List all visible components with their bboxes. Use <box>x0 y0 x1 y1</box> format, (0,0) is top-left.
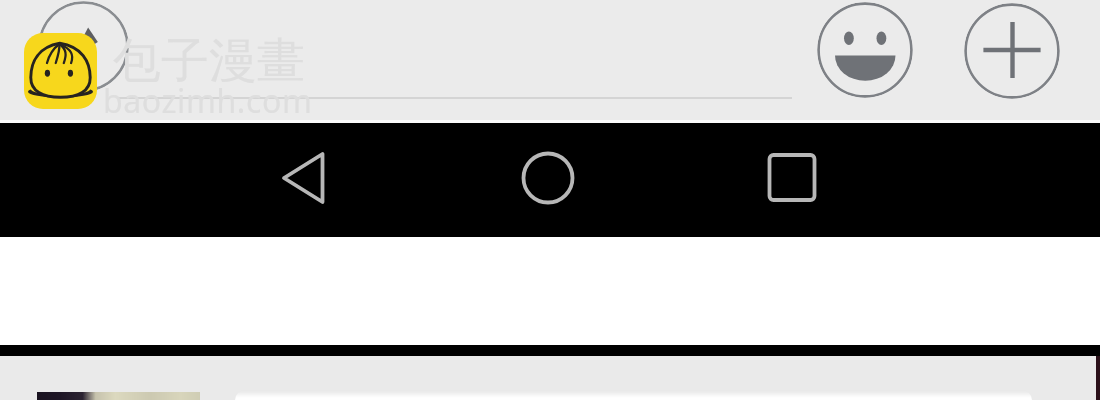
button[interactable]: Profile <box>38 1 129 92</box>
button[interactable]: Back <box>248 140 358 220</box>
button[interactable]: Emoji <box>817 2 913 98</box>
staticText: baozimh.com <box>103 79 313 123</box>
button[interactable]: Home <box>493 140 603 220</box>
button[interactable]: Recent apps <box>737 140 847 220</box>
button[interactable]: Add <box>964 3 1060 99</box>
staticText: 包子漫畫 <box>113 31 305 91</box>
